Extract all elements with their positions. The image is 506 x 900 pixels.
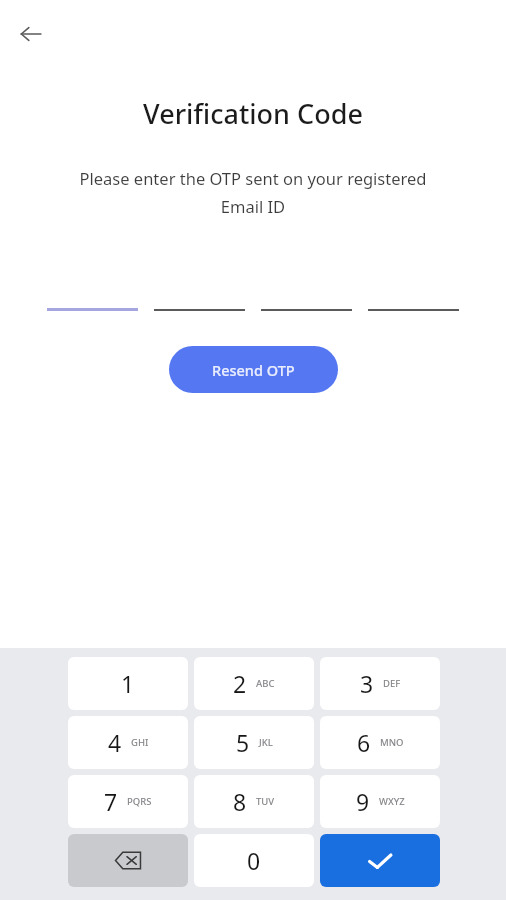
staticText: 3 <box>360 668 374 699</box>
staticText: Resend OTP <box>212 360 295 380</box>
staticText: GHI <box>131 736 149 749</box>
staticText: Verification Code <box>143 95 363 132</box>
staticText: JKL <box>259 736 273 749</box>
button[interactable]: 9 <box>320 775 440 828</box>
button[interactable]: Backspace <box>68 834 188 887</box>
staticText: TUV <box>256 795 275 808</box>
staticText: PQRS <box>127 795 152 808</box>
button[interactable]: 8 <box>194 775 314 828</box>
button[interactable]: 1 <box>68 657 188 710</box>
staticText: MNO <box>380 736 404 749</box>
staticText: DEF <box>383 677 401 690</box>
staticText: 6 <box>357 727 371 758</box>
staticText: Please enter the OTP sent on your regist… <box>64 167 442 218</box>
button[interactable]: 2 <box>194 657 314 710</box>
button[interactable]: Submit <box>320 834 440 887</box>
staticText: 2 <box>233 668 247 699</box>
button[interactable] <box>47 285 138 311</box>
button[interactable]: 4 <box>68 716 188 769</box>
staticText: 0 <box>247 845 261 876</box>
button[interactable] <box>368 285 459 311</box>
staticText: 7 <box>104 786 118 817</box>
staticText: 1 <box>121 668 135 699</box>
button[interactable]: Resend OTP <box>169 346 338 393</box>
staticText: 5 <box>236 727 250 758</box>
staticText: ABC <box>256 677 275 690</box>
staticText: 8 <box>233 786 247 817</box>
button[interactable]: 6 <box>320 716 440 769</box>
button[interactable]: 3 <box>320 657 440 710</box>
staticText: 4 <box>108 727 122 758</box>
button[interactable]: Back <box>10 13 52 55</box>
staticText: WXYZ <box>379 795 405 808</box>
button[interactable]: 7 <box>68 775 188 828</box>
staticText: 9 <box>356 786 370 817</box>
button[interactable] <box>154 285 245 311</box>
button[interactable]: 0 <box>194 834 314 887</box>
button[interactable] <box>261 285 352 311</box>
button[interactable]: 5 <box>194 716 314 769</box>
